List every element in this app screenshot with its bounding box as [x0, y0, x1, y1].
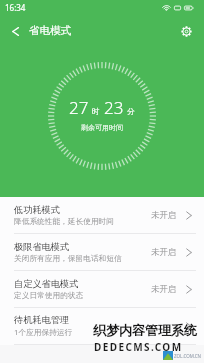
staticText: 定义日常使用的状态: [14, 291, 84, 301]
staticText: ZOL.COM.CN: [174, 353, 201, 359]
staticText: 23: [104, 96, 124, 119]
button[interactable]: 自定义省电模式: [0, 271, 204, 307]
button[interactable]: Settings: [168, 15, 204, 47]
staticText: 1个应用保持运行: [14, 327, 73, 338]
staticText: 分: [127, 107, 135, 116]
staticText: 降低系统性能，延长使用时间: [14, 217, 114, 227]
button[interactable]: 待机耗电管理: [0, 308, 204, 344]
staticText: 27: [69, 96, 89, 119]
staticText: 未开启: [151, 284, 177, 295]
button[interactable]: 低功耗模式: [0, 197, 204, 233]
staticText: 待机耗电管理: [14, 314, 70, 326]
staticText: 极限省电模式: [14, 241, 70, 253]
staticText: 省电模式: [29, 24, 71, 37]
staticText: 时: [92, 107, 100, 116]
staticText: 16:34: [5, 2, 26, 13]
staticText: DEDECMS.COM: [94, 340, 183, 354]
staticText: 织梦内容管理系统: [93, 322, 197, 338]
staticText: 低功耗模式: [14, 204, 60, 216]
staticText: 关闭所有应用，保留电话和短信: [14, 254, 122, 264]
button[interactable]: Back: [0, 15, 31, 47]
button[interactable]: 极限省电模式: [0, 234, 204, 270]
staticText: 自定义省电模式: [14, 278, 79, 290]
staticText: 剩余可用时间: [81, 123, 123, 132]
staticText: 未开启: [151, 210, 177, 221]
staticText: 未开启: [151, 247, 177, 258]
